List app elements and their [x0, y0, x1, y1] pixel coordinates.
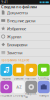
button[interactable]: Настройки [25, 81, 37, 98]
staticText: Внешние диски [7, 18, 35, 23]
button[interactable]: Заметки [0, 49, 50, 57]
button[interactable]: Музыка [0, 64, 12, 81]
button[interactable]: Подкасты [0, 81, 12, 98]
staticText: Музыка [2, 77, 10, 80]
staticText: Напомн. [25, 77, 37, 80]
button[interactable]: Камера [37, 81, 50, 98]
staticText: Словарь [13, 94, 25, 97]
staticText: Документы [7, 10, 28, 15]
staticText: Программы на диске [1, 58, 29, 62]
staticText: Журнал [7, 34, 21, 39]
button[interactable]: AZ [12, 81, 25, 98]
staticText: AZ [16, 84, 21, 90]
staticText: Заметки [7, 50, 22, 55]
staticText: Заметки [14, 77, 24, 80]
staticText: Камера [39, 94, 48, 97]
button[interactable]: Журнал [0, 33, 50, 41]
staticText: Подкасты [0, 94, 12, 97]
button[interactable]: Избранное [0, 25, 50, 33]
button[interactable]: Блокировки [0, 41, 50, 49]
staticText: Блокировки [7, 42, 27, 47]
staticText: Сводка по файлам [1, 4, 37, 9]
button[interactable]: Сообщ. [37, 64, 50, 81]
staticText: Настройки [25, 92, 37, 99]
button[interactable]: Напомн. [25, 64, 37, 81]
button[interactable]: Внешние диски [0, 17, 50, 25]
staticText: 9:41 [1, 0, 8, 4]
staticText: Сообщ. [38, 77, 49, 80]
button[interactable]: Документы [0, 9, 50, 17]
staticText: Избранное [7, 26, 26, 31]
button[interactable]: Заметки [12, 64, 25, 81]
